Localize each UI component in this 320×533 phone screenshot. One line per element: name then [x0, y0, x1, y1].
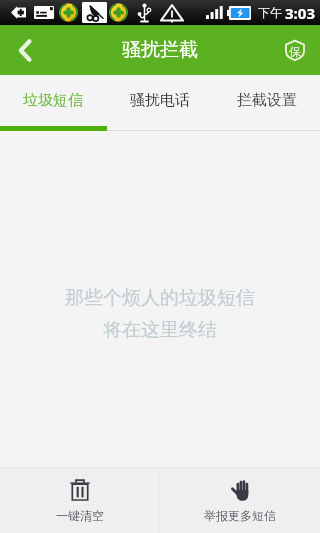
staticText: 垃圾短信	[23, 91, 83, 110]
button[interactable]: Protection settings	[270, 25, 320, 75]
button[interactable]: 骚扰电话	[106, 75, 213, 126]
staticText: 举报更多短信	[204, 508, 276, 523]
staticText: 一键清空	[56, 508, 104, 523]
staticText: 3:03	[285, 3, 315, 23]
staticText: 保	[289, 44, 301, 59]
staticText: 骚扰电话	[130, 91, 190, 110]
staticText: 将在这里终结	[103, 318, 217, 342]
button[interactable]: 拦截设置	[213, 75, 320, 126]
button[interactable]: Back	[0, 25, 50, 75]
button[interactable]: Report more messages	[160, 468, 320, 533]
staticText: 下午	[258, 5, 282, 20]
button[interactable]: 垃圾短信	[0, 75, 106, 126]
staticText: 那些个烦人的垃圾短信	[65, 286, 255, 310]
staticText: 骚扰拦截	[122, 38, 198, 62]
button[interactable]: Clear all	[0, 468, 159, 533]
staticText: 拦截设置	[237, 91, 297, 110]
